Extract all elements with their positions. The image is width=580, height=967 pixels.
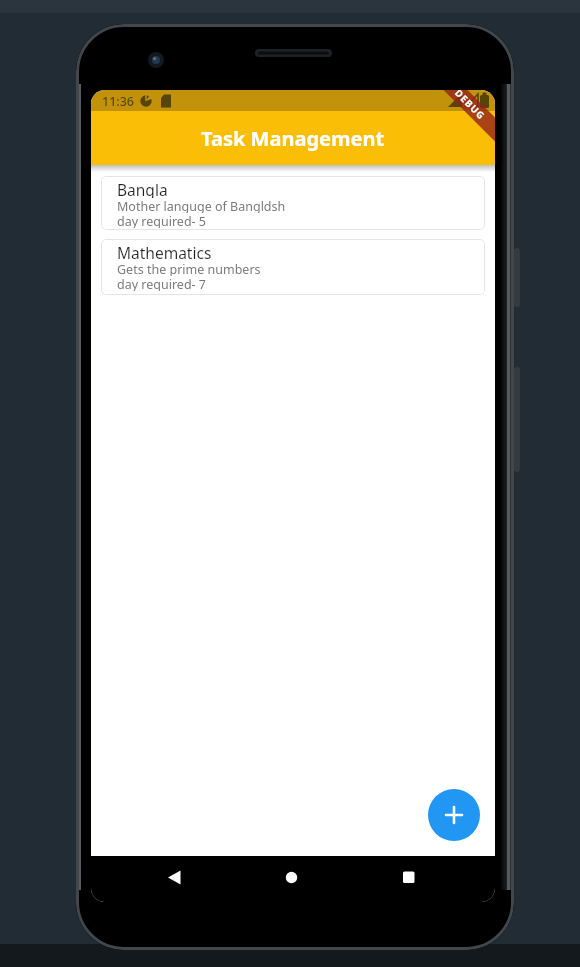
staticText: day required- 5: [117, 213, 207, 228]
staticText: Mathematics: [117, 242, 212, 261]
staticText: Gets the prime numbers: [117, 261, 261, 276]
button[interactable]: [225, 856, 360, 902]
button[interactable]: Mathematics: [101, 239, 485, 295]
staticText: Bangla: [117, 179, 168, 198]
staticText: DEBUG: [452, 90, 488, 123]
button[interactable]: Bangla: [101, 176, 485, 230]
button[interactable]: [91, 856, 225, 902]
button[interactable]: [428, 789, 480, 841]
staticText: 11:36: [102, 93, 135, 110]
staticText: Mother languge of Bangldsh: [117, 198, 286, 213]
staticText: day required- 7: [117, 276, 207, 291]
staticText: Task Management: [201, 125, 385, 152]
button[interactable]: [360, 856, 495, 902]
